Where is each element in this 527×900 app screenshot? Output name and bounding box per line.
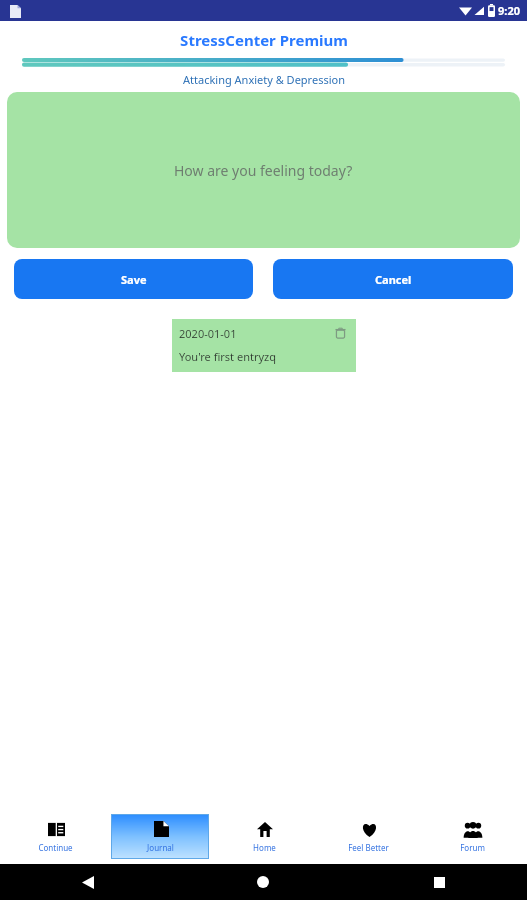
staticText: You're first entryzq	[179, 349, 276, 364]
button[interactable]: How are you feeling today?	[7, 92, 520, 248]
staticText: Continue	[38, 842, 73, 853]
button[interactable]: 2020-01-01	[172, 319, 356, 372]
button[interactable]: Save	[14, 259, 253, 299]
staticText: Feel Better	[348, 842, 389, 853]
button[interactable]: Delete entry	[331, 324, 349, 342]
staticText: How are you feeling today?	[174, 161, 353, 180]
staticText: Save	[121, 272, 147, 287]
staticText: 9:20	[498, 3, 520, 18]
button[interactable]: Forum	[423, 814, 521, 859]
button[interactable]: Journal	[111, 814, 209, 859]
staticText: 2020-01-01	[179, 326, 237, 341]
button[interactable]: Cancel	[273, 259, 513, 299]
button[interactable]: Back	[74, 868, 102, 896]
staticText: Cancel	[375, 272, 412, 287]
button[interactable]: Continue	[6, 814, 105, 859]
button[interactable]: Home	[249, 868, 277, 896]
staticText: Forum	[460, 842, 485, 853]
staticText: Attacking Anxiety & Depression	[183, 72, 345, 87]
button[interactable]: Recent apps	[425, 868, 453, 896]
staticText: Home	[253, 842, 276, 853]
staticText: Journal	[147, 842, 174, 853]
button[interactable]: Home	[215, 814, 313, 859]
button[interactable]: Feel Better	[319, 814, 417, 859]
staticText: StressCenter Premium	[180, 30, 348, 50]
